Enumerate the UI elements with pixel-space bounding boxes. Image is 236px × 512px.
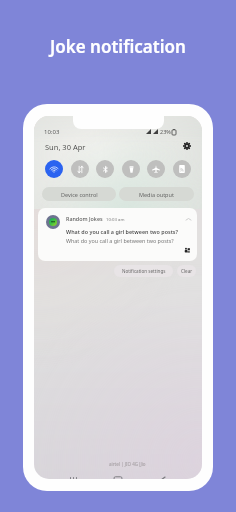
staticText: airtel | JIO 4G|Jio <box>109 461 146 467</box>
staticText: 23% <box>160 128 171 135</box>
button[interactable]: Home <box>113 473 123 479</box>
button[interactable]: Back <box>158 473 168 479</box>
staticText: Random Jokes <box>66 215 103 222</box>
button[interactable]: Recents <box>68 473 78 479</box>
staticText: What do you call a girl between two post… <box>66 228 178 235</box>
button[interactable]: NFC <box>173 160 191 178</box>
staticText: Notification settings <box>122 268 166 274</box>
button[interactable]: Mobile data <box>71 160 89 178</box>
button[interactable]: Flashlight <box>122 160 140 178</box>
staticText: Sun, 30 Apr <box>45 142 86 152</box>
button[interactable]: Quick settings <box>181 140 193 152</box>
button[interactable]: Device control <box>42 187 116 201</box>
staticText: 10:03 <box>44 128 60 136</box>
staticText: Joke notification <box>50 35 186 58</box>
button[interactable]: Clear <box>177 265 196 277</box>
staticText: 10:03 am <box>106 216 125 222</box>
button[interactable]: Wi-Fi <box>45 160 63 178</box>
button[interactable]: Media output <box>119 187 194 201</box>
button[interactable]: Notification settings <box>114 265 173 277</box>
button[interactable]: Airplane mode <box>147 160 165 178</box>
button[interactable]: Expand <box>183 214 193 224</box>
staticText: Media output <box>139 191 174 198</box>
staticText: Device control <box>61 191 98 198</box>
staticText: What do you call a girl between two post… <box>66 237 174 244</box>
button[interactable]: Random Jokes <box>38 208 197 261</box>
staticText: Clear <box>181 268 193 274</box>
button[interactable]: Bluetooth <box>96 160 114 178</box>
